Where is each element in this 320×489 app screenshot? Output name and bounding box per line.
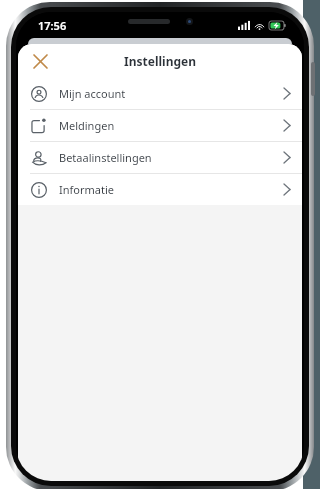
staticText: Instellingen — [124, 53, 196, 69]
staticText: Betaalinstellingen — [59, 150, 152, 165]
staticText: 17:56 — [38, 18, 67, 33]
staticText: Mijn account — [59, 86, 126, 101]
button[interactable]: Betaalinstellingen — [18, 142, 302, 173]
button[interactable]: Informatie — [18, 174, 302, 205]
button[interactable]: Meldingen — [18, 110, 302, 141]
button[interactable]: Sluiten — [26, 47, 54, 75]
button[interactable]: Mijn account — [18, 78, 302, 109]
staticText: Informatie — [59, 182, 114, 197]
staticText: Meldingen — [59, 118, 115, 133]
